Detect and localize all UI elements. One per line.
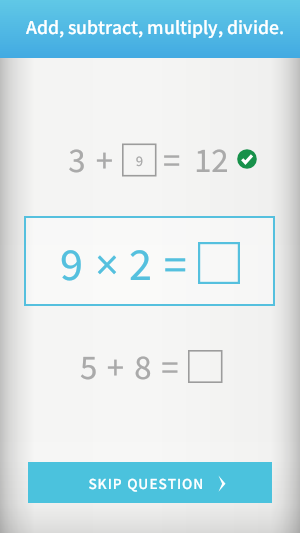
button[interactable]: Add, subtract, multiply, divide. — [0, 0, 300, 58]
button[interactable] — [28, 462, 272, 503]
